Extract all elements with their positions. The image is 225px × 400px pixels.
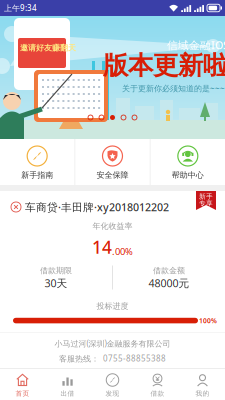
staticText: 邀请好友赚翻天 (20, 43, 76, 53)
staticText: 发现 (105, 389, 119, 398)
button[interactable]: 我的 (180, 368, 225, 400)
staticText: 48000元 (148, 276, 189, 290)
staticText: 安全保障 (96, 170, 128, 180)
button[interactable]: 新手指南 (0, 139, 74, 185)
staticText: 小马过河(深圳)金融服务有限公司 (54, 338, 170, 349)
button[interactable]: 首页 (0, 368, 45, 400)
button[interactable]: 车商贷·丰田牌·xy2018012202 (0, 191, 225, 332)
staticText: 车商贷·丰田牌·xy2018012202 (25, 200, 169, 214)
staticText: 我的 (195, 389, 209, 398)
staticText: 100% (199, 316, 217, 325)
staticText: 客服热线： 0755-88855388 (59, 353, 166, 364)
button[interactable]: 借款 (135, 368, 180, 400)
staticText: 关于更新你必须知道的是~~~~~ (122, 83, 225, 94)
staticText: 新手 (199, 192, 213, 201)
staticText: 首页 (15, 389, 29, 398)
staticText: 30天 (44, 276, 67, 290)
staticText: 专享 (199, 199, 213, 208)
staticText: 借款期限 (40, 266, 72, 275)
staticText: .00% (112, 245, 133, 257)
button[interactable]: 帮助中心 (151, 139, 225, 185)
staticText: 帮助中心 (172, 170, 204, 180)
button[interactable]: 出借 (45, 368, 90, 400)
staticText: 借款 (150, 389, 164, 398)
button[interactable]: 发现 (90, 368, 135, 400)
staticText: 上午9:34 (4, 3, 37, 13)
staticText: 14 (92, 235, 112, 258)
button[interactable]: 安全保障 (75, 139, 150, 185)
staticText: 投标进度 (96, 301, 128, 311)
staticText: 借款金额 (153, 266, 185, 275)
staticText: 信域金融IOS (167, 38, 225, 52)
staticText: 出借 (60, 389, 74, 398)
staticText: 新手指南 (21, 170, 53, 180)
staticText: 版本更新啦 (103, 50, 225, 81)
staticText: 年化收益率 (92, 221, 132, 231)
